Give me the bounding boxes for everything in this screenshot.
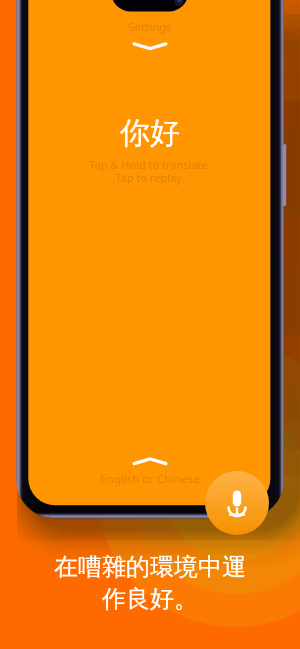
staticText: 在嘈雜的環境中運 作良好。 xyxy=(54,552,246,614)
button[interactable]: Microphone xyxy=(205,471,269,535)
staticText: Tap & Hold to translate. Tap to replay. xyxy=(89,157,211,185)
button[interactable]: English or Chinese xyxy=(28,471,271,487)
staticText: 你好 xyxy=(120,114,180,150)
button[interactable]: Collapse settings xyxy=(131,39,169,53)
staticText: English or Chinese xyxy=(100,471,200,487)
staticText: Settings xyxy=(128,19,172,35)
button[interactable]: Settings xyxy=(28,19,271,35)
button[interactable]: Expand xyxy=(131,454,169,468)
